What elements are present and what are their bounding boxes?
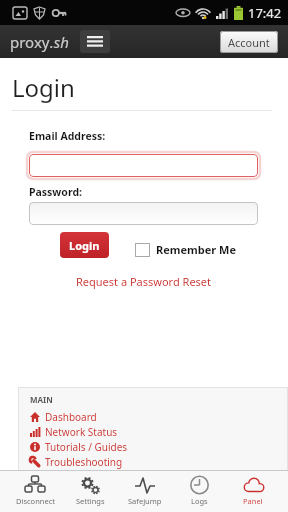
staticText: MAIN <box>30 394 53 405</box>
button[interactable]: Panel <box>226 471 280 512</box>
button[interactable]: Request a Password Reset <box>76 274 212 289</box>
button[interactable]: Disconnect <box>8 471 63 512</box>
button[interactable]: Dashboard <box>30 409 97 424</box>
staticText: .sh <box>50 32 70 52</box>
button[interactable]: Remember Me <box>135 242 237 257</box>
staticText: Panel <box>243 496 263 506</box>
staticText: Remember Me <box>156 242 237 257</box>
button[interactable]: Account <box>220 31 278 53</box>
staticText: Login <box>12 71 75 104</box>
button[interactable]: Login <box>60 232 109 258</box>
button[interactable] <box>29 154 258 177</box>
button[interactable] <box>80 30 110 53</box>
button[interactable]: Tutorials / Guides <box>30 439 128 454</box>
staticText: proxy <box>10 32 50 52</box>
button[interactable]: Logs <box>172 471 226 512</box>
staticText: Account <box>228 35 270 50</box>
staticText: Dashboard <box>45 410 97 424</box>
staticText: 17:42 <box>248 4 282 22</box>
staticText: Password: <box>29 185 82 199</box>
button[interactable] <box>29 202 258 225</box>
button[interactable]: Safejump <box>118 471 172 512</box>
staticText: Disconnect <box>16 496 55 506</box>
staticText: Settings <box>76 496 105 506</box>
staticText: Tutorials / Guides <box>45 440 128 454</box>
button[interactable]: Settings <box>63 471 118 512</box>
staticText: Safejump <box>128 496 162 506</box>
staticText: Login <box>69 238 100 253</box>
staticText: Logs <box>191 496 208 506</box>
button[interactable]: Network Status <box>30 424 118 439</box>
staticText: Email Address: <box>29 129 106 143</box>
staticText: Troubleshooting <box>45 455 123 469</box>
button[interactable]: Troubleshooting <box>30 454 123 469</box>
staticText: Network Status <box>45 425 118 439</box>
